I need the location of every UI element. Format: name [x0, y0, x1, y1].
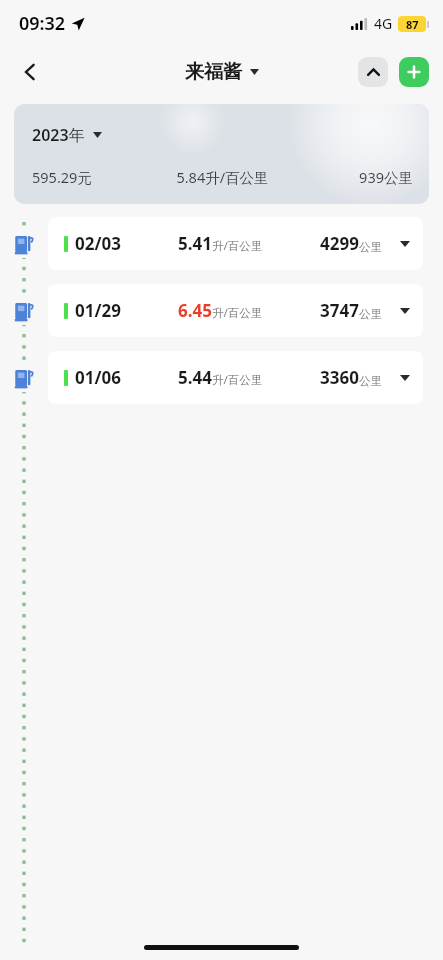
button[interactable]: Back: [8, 50, 52, 94]
button[interactable]: 01/29: [48, 284, 423, 337]
button[interactable]: Expand details: [393, 366, 417, 390]
staticText: 6.45: [178, 299, 212, 322]
staticText: 3360: [320, 366, 359, 389]
staticText: 939公里: [292, 167, 413, 187]
staticText: 01/06: [75, 366, 121, 389]
staticText: 5.84升/百公里: [153, 167, 292, 187]
staticText: 公里: [359, 307, 382, 321]
button[interactable]: Expand details: [393, 232, 417, 256]
staticText: 5.41: [178, 232, 212, 255]
staticText: 4G: [374, 14, 393, 33]
button[interactable]: 02/03: [48, 217, 423, 270]
button[interactable]: 2023年: [14, 104, 429, 204]
staticText: 升/百公里: [212, 305, 263, 321]
staticText: 01/29: [75, 299, 121, 322]
staticText: 5.44: [178, 366, 212, 389]
staticText: 公里: [359, 374, 382, 388]
staticText: 升/百公里: [212, 372, 263, 388]
button[interactable]: Collapse: [358, 57, 388, 87]
staticText: 02/03: [75, 232, 121, 255]
staticText: 升/百公里: [212, 238, 263, 254]
staticText: 595.29元: [32, 167, 153, 187]
button[interactable]: 01/06: [48, 351, 423, 404]
button[interactable]: 2023年: [32, 124, 102, 146]
staticText: 09:32: [19, 11, 66, 36]
button[interactable]: 来福酱: [185, 60, 259, 84]
staticText: 87: [406, 17, 419, 32]
staticText: 来福酱: [185, 60, 242, 84]
staticText: 4299: [320, 232, 359, 255]
button[interactable]: Add record: [399, 57, 429, 87]
button[interactable]: Expand details: [393, 299, 417, 323]
staticText: 公里: [359, 240, 382, 254]
staticText: 2023年: [32, 124, 85, 146]
staticText: 3747: [320, 299, 359, 322]
